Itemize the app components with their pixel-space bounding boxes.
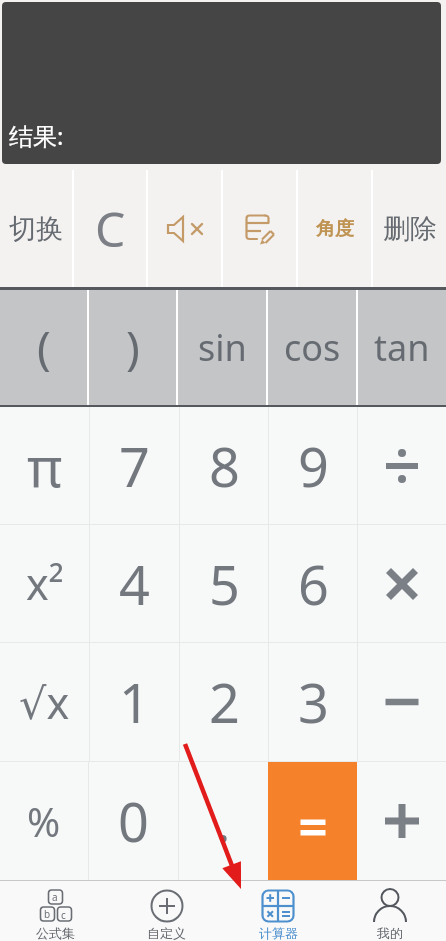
staticText: 自定义: [147, 925, 186, 941]
staticText: 计算器: [259, 925, 298, 941]
staticText: 结果:: [9, 119, 64, 152]
button[interactable]: [357, 762, 446, 880]
button[interactable]: 自定义: [111, 881, 222, 941]
button[interactable]: ): [89, 290, 176, 405]
staticText: 2: [209, 665, 240, 739]
button[interactable]: tan: [358, 290, 446, 405]
staticText: x²: [26, 554, 64, 613]
button[interactable]: cos: [268, 290, 356, 405]
staticText: 1: [119, 665, 150, 739]
button[interactable]: C: [74, 170, 146, 287]
staticText: 7: [119, 429, 150, 503]
button[interactable]: 2: [180, 643, 268, 761]
staticText: 3: [298, 665, 329, 739]
staticText: 6: [298, 547, 329, 621]
staticText: C: [95, 196, 126, 261]
button[interactable]: 4: [90, 525, 179, 642]
button[interactable]: 0: [89, 762, 178, 880]
button[interactable]: 我的: [334, 881, 446, 941]
staticText: .: [216, 784, 231, 858]
staticText: 公式集: [36, 925, 75, 941]
staticText: 5: [209, 547, 240, 621]
button[interactable]: [358, 643, 446, 761]
button[interactable]: 9: [269, 407, 357, 524]
staticText: c: [61, 908, 66, 922]
button[interactable]: 6: [269, 525, 357, 642]
staticText: b: [44, 907, 51, 921]
button[interactable]: sin: [178, 290, 266, 405]
staticText: %: [27, 794, 61, 848]
button[interactable]: 3: [269, 643, 357, 761]
button[interactable]: 7: [90, 407, 179, 524]
button[interactable]: x²: [0, 525, 89, 642]
staticText: 切换: [9, 212, 63, 246]
staticText: √x: [19, 673, 70, 732]
staticText: 角度: [316, 217, 354, 241]
button[interactable]: [223, 170, 296, 287]
button[interactable]: 1: [90, 643, 179, 761]
staticText: 我的: [377, 925, 403, 941]
button[interactable]: [148, 170, 221, 287]
staticText: 删除: [383, 212, 437, 246]
button[interactable]: 切换: [0, 170, 72, 287]
button[interactable]: 删除: [373, 170, 446, 287]
button[interactable]: [358, 407, 446, 524]
staticText: 9: [298, 429, 329, 503]
staticText: 4: [119, 547, 150, 621]
button[interactable]: π: [0, 407, 89, 524]
staticText: (: [37, 316, 51, 379]
staticText: a: [52, 890, 58, 904]
staticText: sin: [198, 323, 247, 372]
button[interactable]: (: [0, 290, 87, 405]
staticText: 0: [118, 784, 149, 858]
button[interactable]: %: [0, 762, 88, 880]
button[interactable]: [268, 762, 357, 880]
staticText: ): [126, 316, 140, 379]
button[interactable]: [358, 525, 446, 642]
staticText: π: [27, 429, 63, 503]
button[interactable]: √x: [0, 643, 89, 761]
staticText: tan: [374, 323, 430, 372]
button[interactable]: 5: [180, 525, 268, 642]
button[interactable]: 计算器: [222, 881, 334, 941]
button[interactable]: 8: [180, 407, 268, 524]
button[interactable]: 角度: [298, 170, 371, 287]
staticText: 8: [209, 429, 240, 503]
button[interactable]: a: [0, 881, 111, 941]
staticText: cos: [284, 323, 341, 372]
button[interactable]: .: [179, 762, 268, 880]
